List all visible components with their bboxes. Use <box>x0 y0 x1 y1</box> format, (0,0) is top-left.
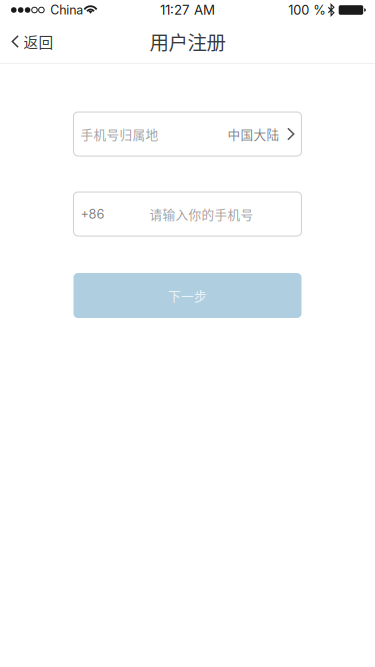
staticText: 返回 <box>23 31 53 52</box>
staticText: 下一步 <box>168 286 207 305</box>
staticText: 100 % <box>288 2 326 18</box>
button[interactable]: 下一步 <box>73 273 301 318</box>
button[interactable]: 手机号归属地 <box>73 112 301 156</box>
staticText: 请输入你的手机号 <box>149 205 253 223</box>
staticText: 用户注册 <box>149 27 225 56</box>
staticText: 手机号归属地 <box>80 125 158 143</box>
staticText: +86 <box>80 206 104 222</box>
button[interactable]: 返回 <box>0 20 67 63</box>
staticText: China <box>50 2 83 17</box>
staticText: 11:27 AM <box>160 2 215 18</box>
staticText: 中国大陆 <box>228 125 280 143</box>
